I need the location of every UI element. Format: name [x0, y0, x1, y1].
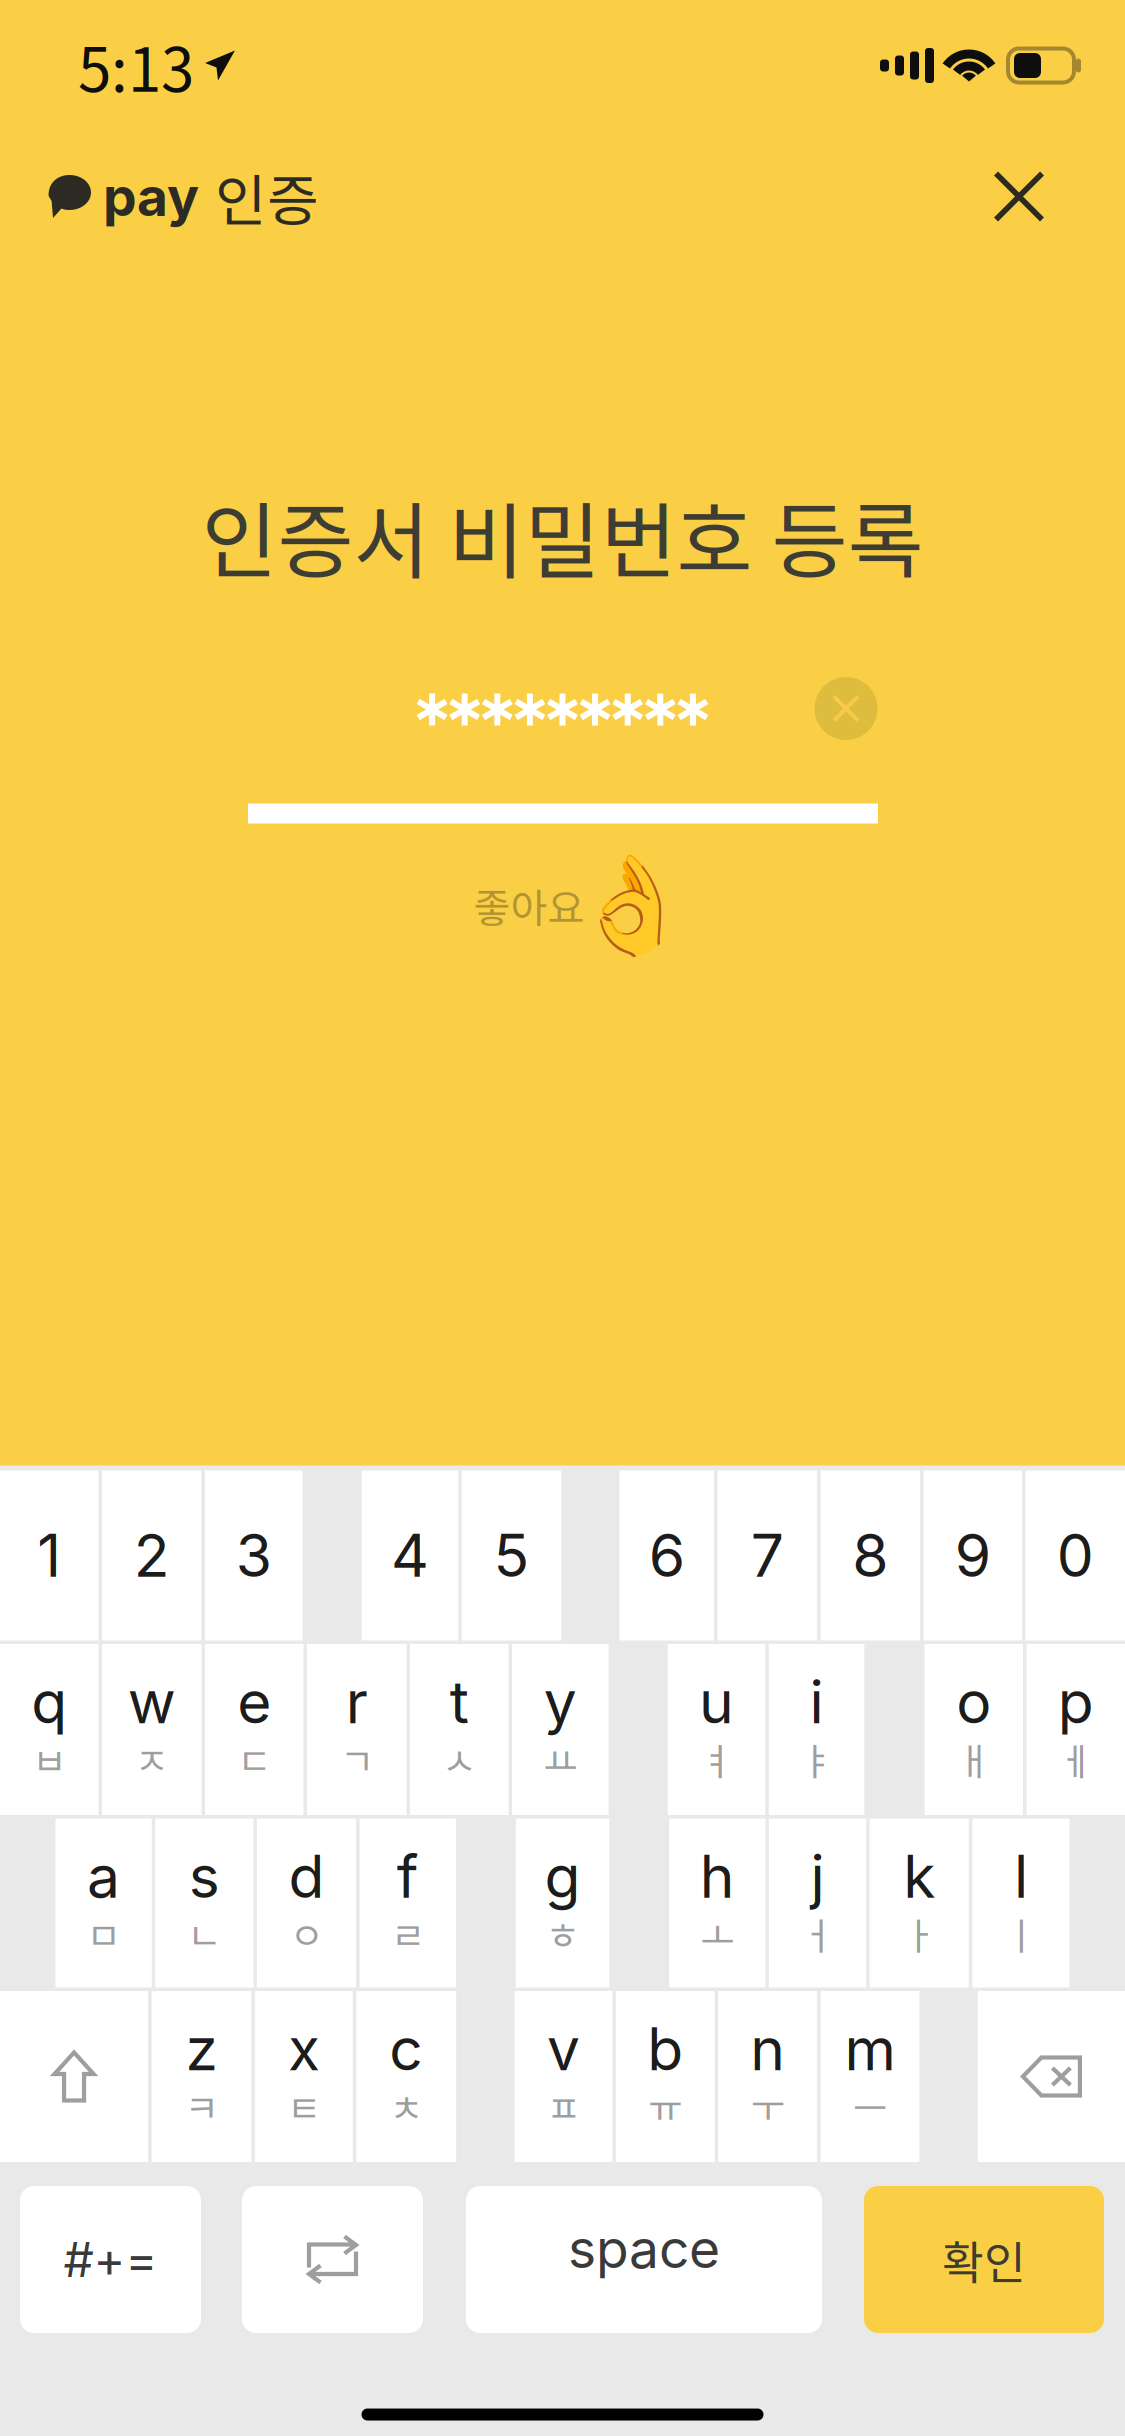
staticText: u: [699, 1666, 734, 1737]
button[interactable]: r: [307, 1644, 406, 1815]
button[interactable]: n: [718, 1991, 817, 2162]
button[interactable]: k: [870, 1818, 969, 1987]
button[interactable]: 9: [924, 1470, 1022, 1640]
button[interactable]: 1: [0, 1470, 98, 1640]
staticText: q: [31, 1666, 67, 1737]
staticText: 확인: [942, 2227, 1026, 2292]
button[interactable]: 확인: [864, 2186, 1104, 2333]
button[interactable]: d: [257, 1818, 356, 1987]
staticText: d: [289, 1841, 325, 1912]
staticText: o: [956, 1666, 991, 1737]
button[interactable]: #+=: [20, 2186, 201, 2333]
button[interactable]: e: [205, 1644, 303, 1815]
staticText: ㅔ: [1059, 1732, 1093, 1786]
button[interactable]: i: [769, 1644, 864, 1815]
button[interactable]: 0: [1025, 1470, 1125, 1640]
button[interactable]: z: [152, 1991, 251, 2162]
staticText: ㅛ: [543, 1732, 577, 1786]
staticText: e: [237, 1666, 271, 1737]
staticText: n: [750, 2013, 785, 2084]
button[interactable]: l: [972, 1818, 1070, 1987]
staticText: 8: [852, 1520, 888, 1591]
staticText: ㄷ: [237, 1732, 271, 1786]
staticText: ㄱ: [340, 1732, 374, 1786]
button[interactable]: 2: [102, 1470, 201, 1640]
staticText: 좋아요: [473, 876, 584, 934]
button[interactable]: m: [820, 1991, 919, 2162]
staticText: 👌: [571, 849, 691, 962]
button[interactable]: h: [669, 1818, 765, 1987]
button[interactable]: j: [769, 1818, 866, 1987]
button[interactable]: Shift: [0, 1991, 148, 2162]
button[interactable]: 6: [619, 1470, 714, 1640]
staticText: 인증: [215, 156, 319, 237]
button[interactable]: space: [466, 2186, 822, 2333]
staticText: ㅠ: [648, 2079, 682, 2133]
staticText: 7: [751, 1520, 784, 1591]
button[interactable]: 3: [205, 1470, 302, 1640]
staticText: ㅑ: [800, 1732, 834, 1786]
staticText: 4: [391, 1520, 429, 1591]
staticText: ㅊ: [389, 2079, 423, 2133]
button[interactable]: Clear: [814, 677, 877, 740]
staticText: w: [128, 1666, 176, 1737]
staticText: x: [288, 2013, 320, 2084]
staticText: z: [186, 2013, 218, 2084]
button[interactable]: 8: [821, 1470, 920, 1640]
staticText: ㄹ: [391, 1906, 425, 1961]
staticText: ㅅ: [442, 1732, 476, 1786]
staticText: ㅜ: [751, 2079, 785, 2133]
staticText: h: [700, 1841, 735, 1912]
button[interactable]: x: [255, 1991, 353, 2162]
staticText: ㅡ: [853, 2079, 887, 2133]
staticText: m: [844, 2013, 895, 2084]
staticText: a: [87, 1841, 120, 1912]
staticText: ㅇ: [290, 1906, 324, 1961]
button[interactable]: p: [1026, 1644, 1125, 1815]
staticText: 3: [236, 1520, 272, 1591]
staticText: ㅁ: [87, 1906, 121, 1961]
staticText: ㅍ: [546, 2079, 580, 2133]
button[interactable]: t: [410, 1644, 508, 1815]
staticText: #+=: [63, 2230, 157, 2289]
button[interactable]: 4: [362, 1470, 458, 1640]
staticText: t: [450, 1666, 469, 1737]
button[interactable]: s: [155, 1818, 253, 1987]
staticText: k: [903, 1841, 935, 1912]
button[interactable]: c: [356, 1991, 456, 2162]
staticText: y: [544, 1666, 577, 1737]
staticText: g: [545, 1841, 581, 1912]
button[interactable]: 7: [718, 1470, 817, 1640]
staticText: 5:13: [78, 22, 194, 109]
staticText: i: [810, 1666, 824, 1737]
button[interactable]: o: [924, 1644, 1023, 1815]
staticText: ㅋ: [185, 2079, 219, 2133]
button[interactable]: b: [616, 1991, 715, 2162]
staticText: 1: [37, 1520, 61, 1591]
button[interactable]: a: [55, 1818, 152, 1987]
staticText: 인증서 비밀번호 등록: [201, 476, 923, 595]
staticText: f: [397, 1841, 419, 1912]
button[interactable]: y: [512, 1644, 609, 1815]
button[interactable]: q: [0, 1644, 98, 1815]
staticText: ㅕ: [700, 1732, 734, 1786]
button[interactable]: w: [102, 1644, 201, 1815]
staticText: ㅌ: [287, 2079, 321, 2133]
staticText: v: [547, 2013, 580, 2084]
button[interactable]: Backspace: [978, 1991, 1125, 2162]
staticText: r: [346, 1666, 368, 1737]
button[interactable]: 5: [462, 1470, 561, 1640]
staticText: ㅂ: [32, 1732, 66, 1786]
staticText: s: [189, 1841, 220, 1912]
button[interactable]: Switch keyboard: [242, 2186, 423, 2333]
staticText: 5: [493, 1520, 529, 1591]
button[interactable]: f: [360, 1818, 456, 1987]
button[interactable]: g: [516, 1818, 609, 1987]
staticText: b: [647, 2013, 683, 2084]
button[interactable]: v: [515, 1991, 612, 2162]
staticText: 2: [134, 1520, 170, 1591]
staticText: ㅎ: [546, 1906, 580, 1961]
button[interactable]: Close: [964, 141, 1074, 251]
staticText: 6: [649, 1520, 685, 1591]
button[interactable]: u: [668, 1644, 765, 1815]
